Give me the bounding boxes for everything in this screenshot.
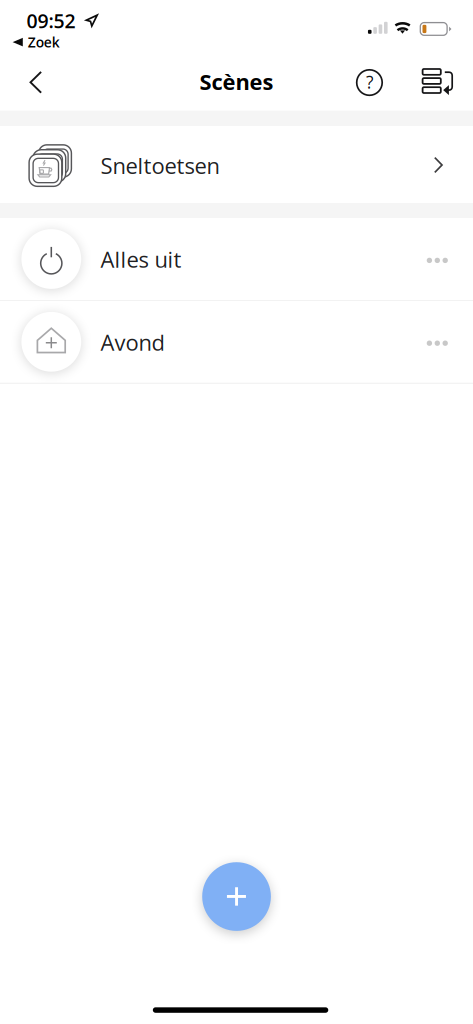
button[interactable]: Zoek [13, 36, 60, 49]
staticText: Zoek [28, 33, 60, 51]
staticText: 09:52 [27, 7, 76, 34]
staticText: Scènes [199, 67, 273, 96]
staticText: Avond [100, 327, 164, 357]
button[interactable]: Avond [0, 301, 473, 383]
button[interactable]: Add scene [202, 862, 271, 931]
button[interactable]: Help [348, 61, 391, 104]
button[interactable]: Back [13, 58, 58, 107]
button[interactable]: Reorder scenes [414, 60, 463, 102]
button[interactable]: Alles uit [0, 218, 473, 300]
staticText: Alles uit [100, 244, 181, 274]
staticText: ? [366, 70, 373, 94]
staticText: Sneltoetsen [100, 150, 219, 180]
button[interactable]: Sneltoetsen [0, 126, 473, 203]
